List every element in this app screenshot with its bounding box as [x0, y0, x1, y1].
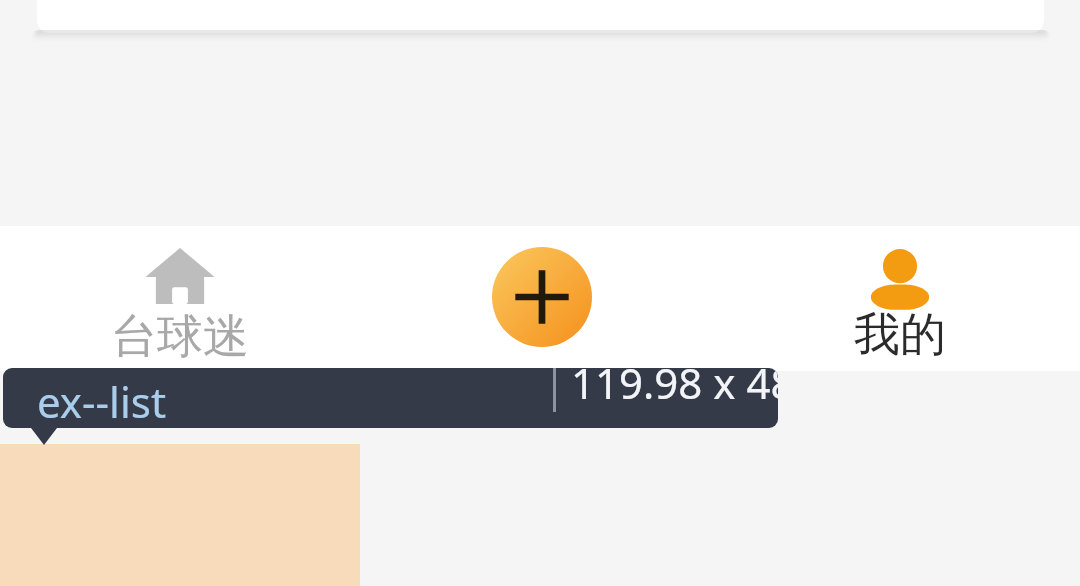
button[interactable]: Add: [492, 247, 592, 347]
staticText: 台球迷: [111, 308, 249, 366]
button[interactable]: 我的: [780, 226, 1020, 371]
staticText: ex--list: [37, 373, 167, 428]
button[interactable]: [37, 0, 1044, 33]
staticText: 119.98 x 48: [571, 368, 778, 411]
staticText: 我的: [854, 306, 946, 364]
button[interactable]: 台球迷: [60, 226, 300, 371]
